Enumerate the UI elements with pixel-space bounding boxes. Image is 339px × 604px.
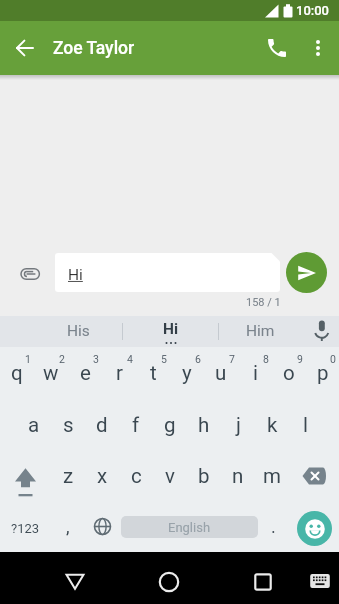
- button[interactable]: y: [170, 347, 204, 399]
- staticText: l: [303, 413, 308, 437]
- staticText: c: [131, 464, 142, 488]
- button[interactable]: p: [306, 347, 339, 399]
- button[interactable]: Him: [219, 316, 301, 347]
- button[interactable]: q: [0, 347, 34, 399]
- button[interactable]: [53, 559, 97, 603]
- button[interactable]: x: [85, 450, 119, 501]
- staticText: f: [132, 413, 140, 437]
- staticText: m: [263, 464, 281, 488]
- button[interactable]: ,: [51, 501, 85, 552]
- button[interactable]: Hi: [123, 316, 218, 347]
- button[interactable]: ?123: [0, 501, 51, 552]
- button[interactable]: b: [187, 450, 221, 501]
- button[interactable]: k: [255, 399, 289, 450]
- staticText: w: [43, 361, 59, 385]
- staticText: 5: [161, 353, 167, 365]
- staticText: q: [11, 361, 23, 385]
- staticText: 9: [297, 353, 303, 365]
- button[interactable]: t: [136, 347, 170, 399]
- button[interactable]: g: [153, 399, 187, 450]
- staticText: Zoe Taylor: [53, 38, 135, 59]
- staticText: 6: [195, 353, 201, 365]
- button[interactable]: j: [221, 399, 255, 450]
- button[interactable]: w: [34, 347, 68, 399]
- button[interactable]: [286, 252, 327, 293]
- staticText: v: [165, 464, 175, 488]
- staticText: Hi: [68, 266, 83, 284]
- staticText: p: [317, 361, 329, 385]
- button[interactable]: c: [119, 450, 153, 501]
- staticText: Hi: [163, 320, 179, 338]
- button[interactable]: [301, 316, 339, 347]
- staticText: 2: [59, 353, 65, 365]
- staticText: 1: [25, 353, 31, 365]
- staticText: His: [67, 322, 90, 340]
- staticText: h: [198, 413, 210, 437]
- staticText: 158 / 1: [246, 296, 281, 309]
- staticText: 4: [127, 353, 133, 365]
- staticText: d: [96, 413, 108, 437]
- button[interactable]: l: [289, 399, 322, 450]
- staticText: 0: [330, 353, 336, 365]
- button[interactable]: [14, 252, 46, 293]
- staticText: k: [267, 413, 278, 437]
- staticText: Him: [246, 322, 275, 340]
- button[interactable]: His: [0, 316, 122, 347]
- staticText: u: [215, 361, 227, 385]
- staticText: .: [271, 516, 276, 537]
- button[interactable]: Hi: [55, 253, 280, 292]
- button[interactable]: [257, 28, 297, 68]
- staticText: t: [150, 361, 157, 385]
- staticText: 3: [93, 353, 99, 365]
- staticText: e: [80, 361, 91, 385]
- button[interactable]: [289, 450, 339, 501]
- staticText: z: [63, 464, 74, 488]
- staticText: o: [283, 361, 295, 385]
- button[interactable]: [3, 26, 47, 70]
- staticText: s: [63, 413, 74, 437]
- staticText: ,: [66, 516, 70, 537]
- button[interactable]: English: [119, 501, 258, 552]
- button[interactable]: f: [119, 399, 153, 450]
- button[interactable]: e: [68, 347, 102, 399]
- button[interactable]: [300, 561, 339, 601]
- button[interactable]: [298, 28, 338, 68]
- button[interactable]: [147, 560, 191, 604]
- staticText: i: [253, 361, 258, 385]
- staticText: 10:00: [296, 3, 330, 18]
- button[interactable]: z: [51, 450, 85, 501]
- button[interactable]: d: [85, 399, 119, 450]
- staticText: 8: [263, 353, 269, 365]
- staticText: x: [97, 464, 108, 488]
- button[interactable]: r: [102, 347, 136, 399]
- button[interactable]: o: [272, 347, 306, 399]
- button[interactable]: h: [187, 399, 221, 450]
- button[interactable]: i: [238, 347, 272, 399]
- button[interactable]: m: [255, 450, 289, 501]
- staticText: ?123: [11, 521, 40, 536]
- button[interactable]: .: [258, 501, 289, 552]
- button[interactable]: v: [153, 450, 187, 501]
- staticText: j: [236, 413, 241, 437]
- button[interactable]: [85, 501, 119, 552]
- staticText: b: [198, 464, 210, 488]
- staticText: r: [116, 361, 123, 385]
- button[interactable]: s: [51, 399, 85, 450]
- button[interactable]: n: [221, 450, 255, 501]
- button[interactable]: [241, 560, 285, 604]
- staticText: a: [28, 413, 40, 437]
- staticText: 7: [229, 353, 235, 365]
- staticText: g: [164, 413, 176, 437]
- staticText: y: [182, 361, 192, 385]
- button[interactable]: a: [17, 399, 51, 450]
- staticText: English: [168, 520, 211, 535]
- button[interactable]: [289, 501, 339, 552]
- button[interactable]: u: [204, 347, 238, 399]
- staticText: n: [232, 464, 244, 488]
- button[interactable]: [0, 450, 51, 501]
